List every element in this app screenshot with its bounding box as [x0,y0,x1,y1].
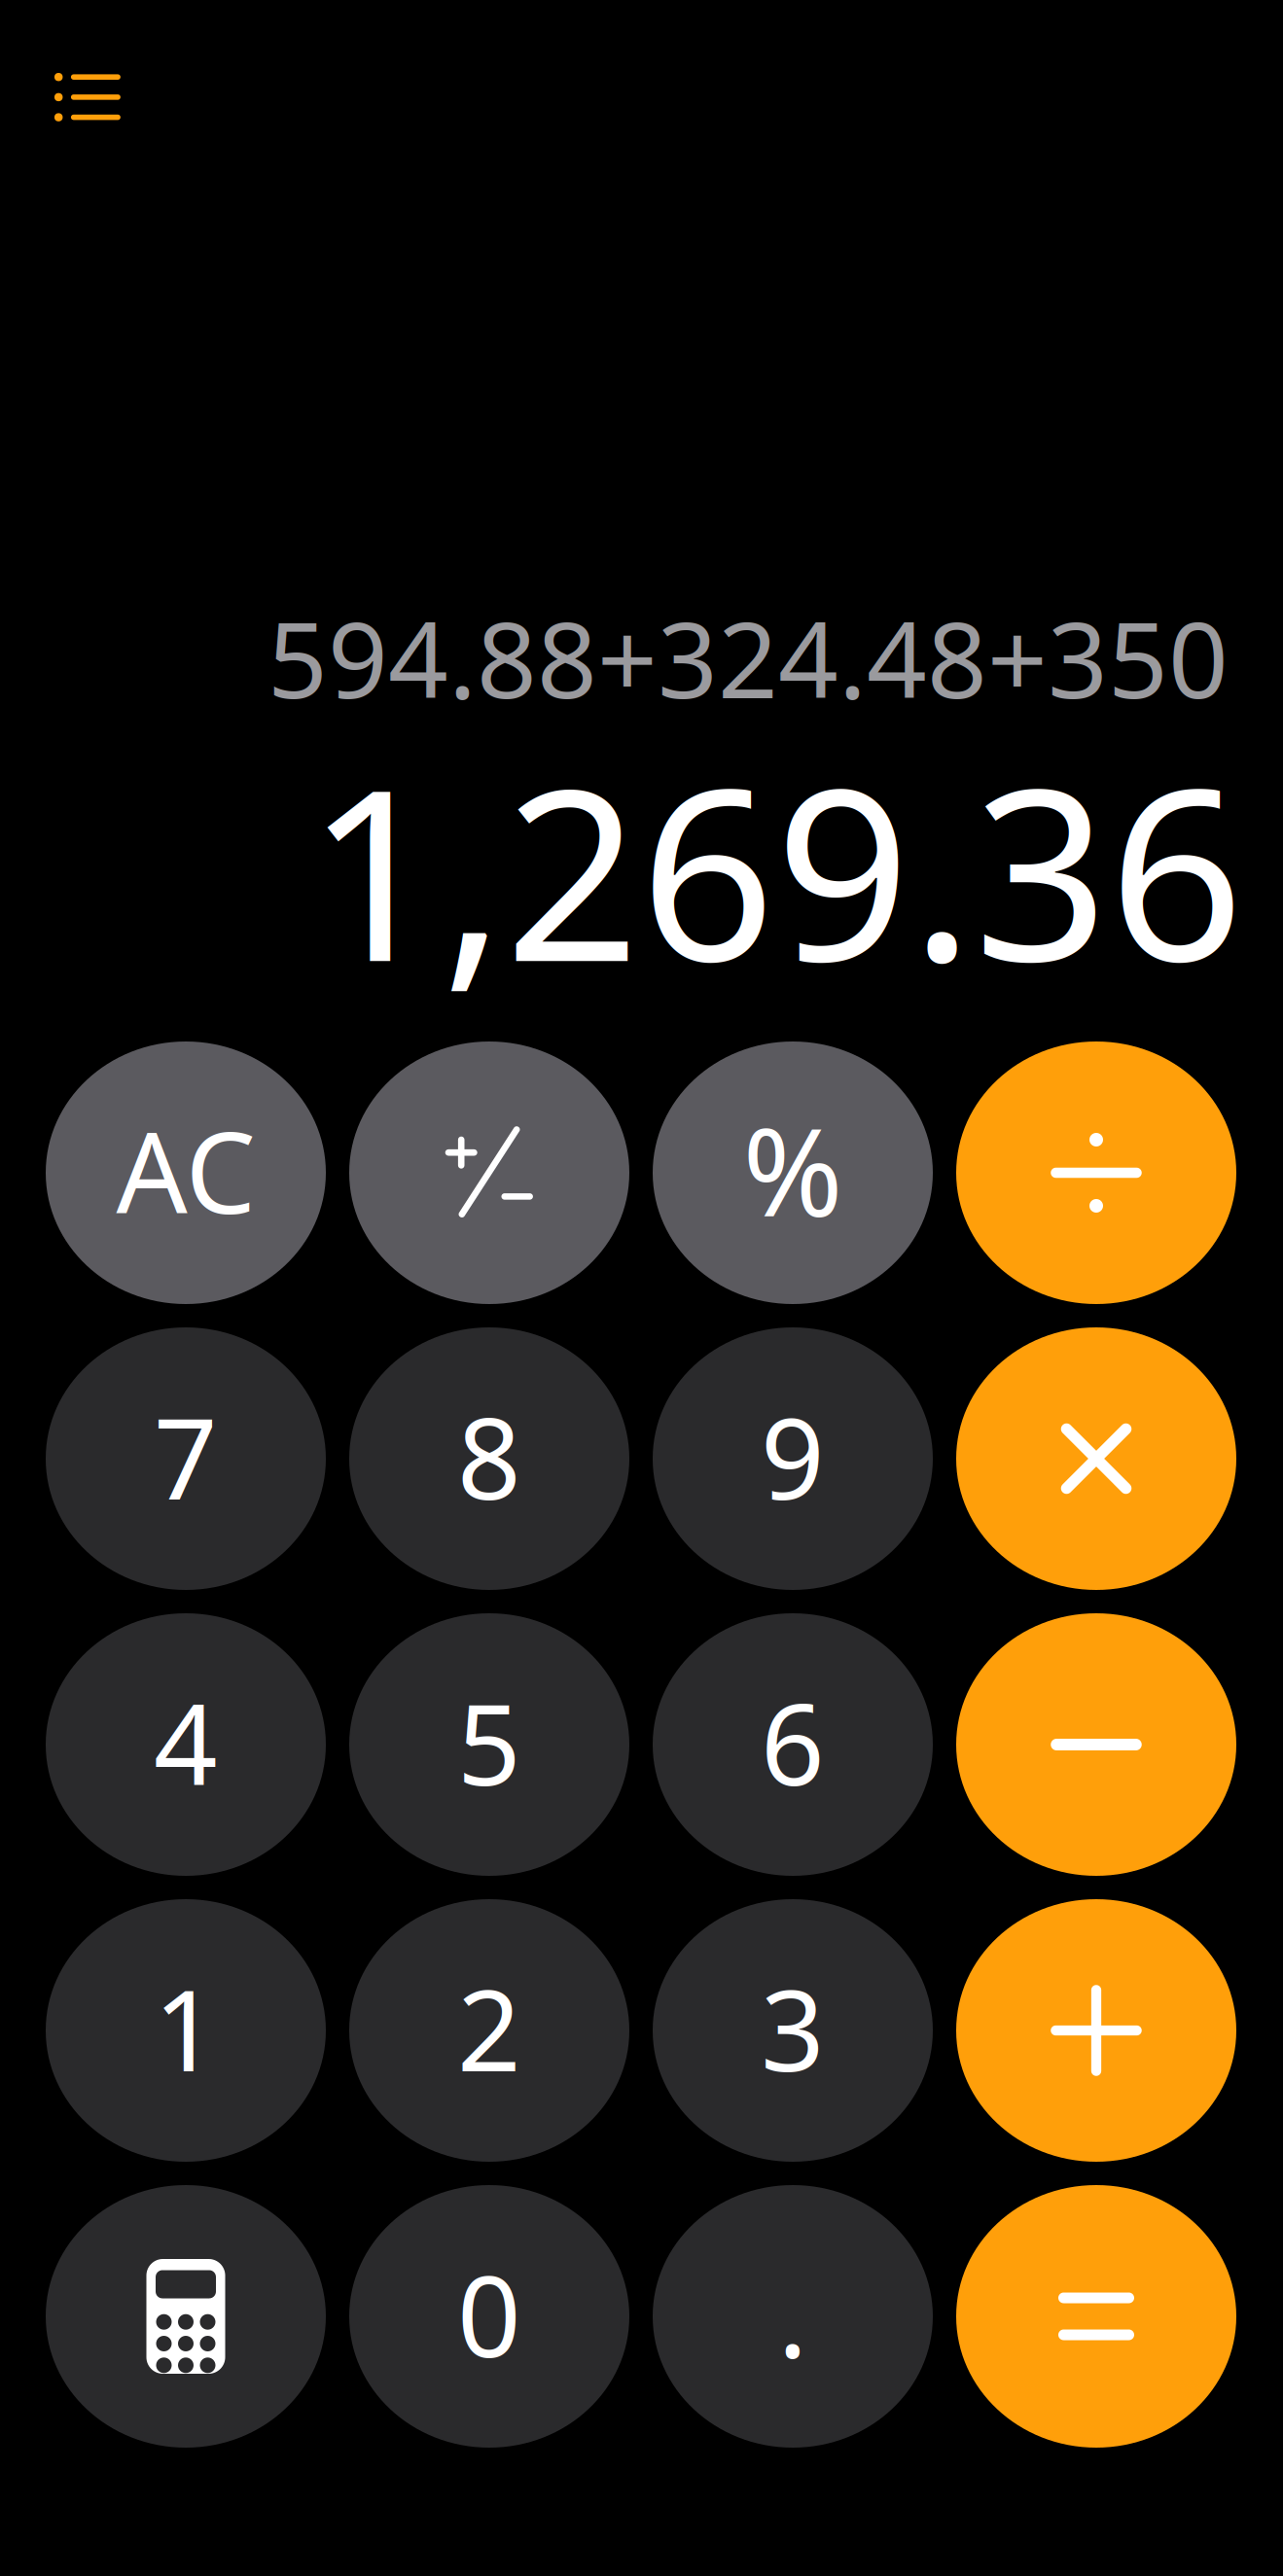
button[interactable]: 6 [653,1613,933,1876]
staticText: 4 [154,1668,218,1816]
button[interactable]: 2 [349,1899,629,2162]
button[interactable]: 9 [653,1327,933,1590]
button[interactable]: AC [46,1041,326,1304]
staticText: 2 [457,1954,521,2102]
button[interactable]: History [30,44,147,151]
button[interactable]: Calculator [46,2185,326,2448]
staticText: 8 [457,1382,521,1530]
button[interactable]: Equals [956,2185,1236,2448]
staticText: 5 [457,1668,521,1816]
button[interactable]: Plus minus [349,1041,629,1304]
button[interactable]: 3 [653,1899,933,2162]
staticText: 1,269.36 [306,713,1244,1026]
staticText: 1 [154,1954,218,2102]
staticText: % [743,1090,843,1250]
button[interactable]: Multiply [956,1327,1236,1590]
button[interactable]: Divide [956,1041,1236,1304]
staticText: 594.88+324.48+350 [267,588,1229,727]
staticText: AC [116,1096,255,1244]
button[interactable]: 5 [349,1613,629,1876]
staticText: 0 [457,2240,521,2388]
staticText: 9 [761,1382,825,1530]
staticText: 6 [761,1668,825,1816]
button[interactable]: 8 [349,1327,629,1590]
button[interactable]: 7 [46,1327,326,1590]
button[interactable]: Subtract [956,1613,1236,1876]
button[interactable]: 4 [46,1613,326,1876]
button[interactable]: Add [956,1899,1236,2162]
staticText: 3 [761,1954,825,2102]
button[interactable]: 0 [349,2185,629,2448]
staticText: 7 [154,1382,218,1530]
button[interactable]: Percent [653,1041,933,1304]
button[interactable]: 1 [46,1899,326,2162]
button[interactable]: . [653,2185,933,2448]
staticText: . [778,2240,808,2388]
